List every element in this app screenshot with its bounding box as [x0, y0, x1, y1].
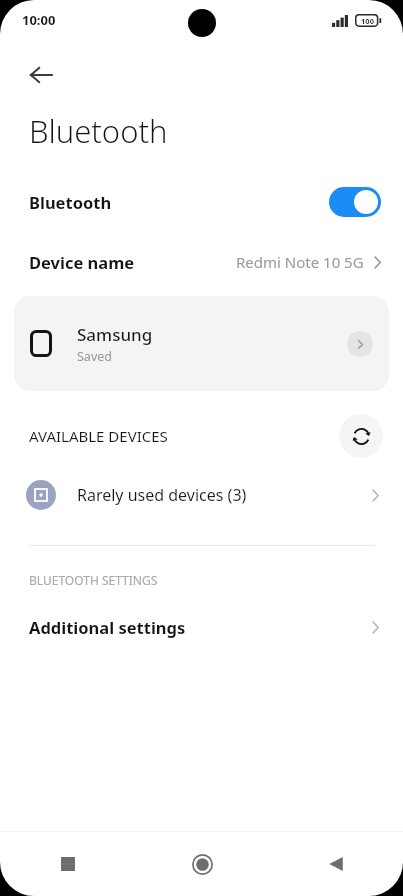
button[interactable]: Samsung device settings [347, 331, 373, 357]
staticText: 100 [361, 16, 374, 26]
staticText: Redmi Note 10 5G [236, 252, 364, 272]
button[interactable]: Bluetooth toggle [329, 187, 381, 217]
button[interactable]: Bluetooth [0, 176, 403, 228]
staticText: Bluetooth [29, 191, 112, 213]
button[interactable]: Samsung [14, 296, 389, 391]
button[interactable]: Rarely used devices (3) [0, 469, 403, 521]
staticText: BLUETOOTH SETTINGS [29, 572, 158, 588]
button[interactable]: Additional settings [0, 604, 403, 650]
staticText: Bluetooth [29, 110, 168, 152]
button[interactable]: Home [135, 832, 269, 896]
staticText: Additional settings [29, 616, 186, 638]
staticText: AVAILABLE DEVICES [29, 426, 168, 446]
staticText: 10:00 [22, 11, 56, 29]
staticText: Rarely used devices (3) [77, 484, 247, 506]
button[interactable]: Back [16, 50, 66, 100]
button[interactable]: Back [269, 832, 403, 896]
button[interactable]: Refresh [339, 414, 383, 458]
staticText: Saved [77, 348, 112, 365]
button[interactable]: Recents [0, 832, 135, 896]
staticText: Samsung [77, 323, 153, 346]
staticText: Device name [29, 251, 135, 273]
button[interactable]: Device name [0, 236, 403, 288]
